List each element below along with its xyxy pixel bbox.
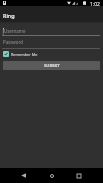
button[interactable]: Password — [2, 39, 100, 49]
staticText: Ring — [3, 12, 15, 19]
staticText: Password — [3, 39, 23, 45]
staticText: Username — [4, 28, 26, 34]
button[interactable]: Home — [45, 168, 59, 183]
staticText: 1:02 — [90, 1, 100, 7]
button[interactable]: Remember Me — [3, 51, 38, 57]
button[interactable]: Username — [2, 26, 100, 36]
staticText: SUBMIT — [44, 63, 60, 69]
staticText: Remember Me — [11, 52, 38, 57]
button[interactable]: SUBMIT — [3, 61, 100, 70]
button[interactable]: Recents — [72, 168, 86, 183]
button[interactable]: Back — [16, 168, 30, 183]
